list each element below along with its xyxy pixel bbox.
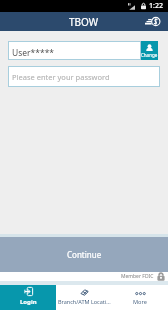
button[interactable]: Pay: [136, 12, 168, 31]
staticText: Member FDIC: [121, 273, 154, 280]
button[interactable]: Login: [0, 285, 56, 310]
staticText: Please enter your password: [12, 72, 110, 82]
staticText: TBOW: [69, 15, 99, 29]
button[interactable]: Branch/ATM Locati...: [56, 285, 112, 310]
staticText: Branch/ATM Locati...: [58, 298, 111, 305]
button[interactable]: Change: [141, 41, 158, 60]
staticText: Login: [20, 298, 37, 306]
staticText: Change: [141, 52, 158, 58]
staticText: User*****: [12, 47, 55, 59]
staticText: 1:22: [149, 1, 163, 11]
staticText: Continue: [67, 249, 102, 260]
button[interactable]: Continue: [0, 237, 168, 272]
button[interactable]: More: [112, 285, 168, 310]
staticText: More: [133, 298, 147, 306]
button[interactable]: Please enter your password: [8, 66, 160, 87]
button[interactable]: User*****: [8, 41, 141, 60]
